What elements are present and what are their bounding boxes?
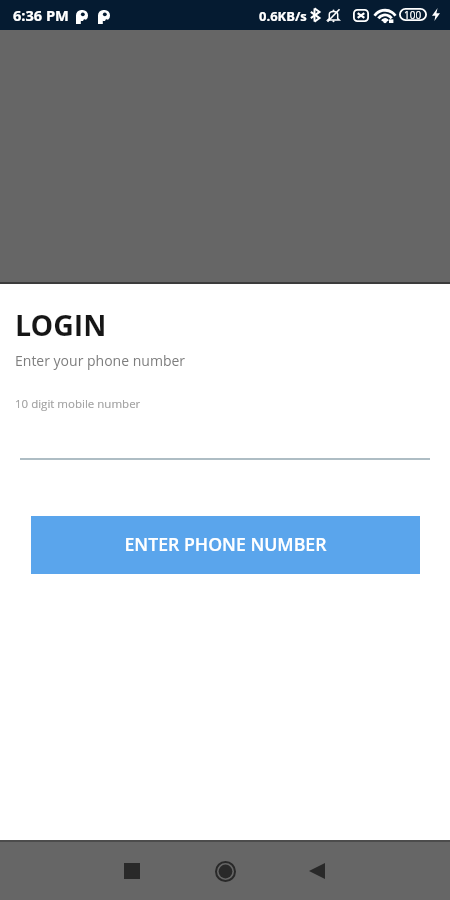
staticText: 0.6KB/s	[259, 7, 307, 25]
button[interactable]: Home	[201, 842, 249, 900]
button[interactable]: ENTER PHONE NUMBER	[31, 516, 420, 574]
staticText: ENTER PHONE NUMBER	[124, 532, 327, 556]
staticText: 6:36 PM	[13, 5, 69, 25]
button[interactable]: Back	[293, 842, 341, 900]
staticText: Enter your phone number	[15, 351, 186, 370]
staticText: 10 digit mobile number	[15, 396, 141, 412]
button[interactable]: 10 digit mobile number	[20, 388, 430, 460]
staticText: LOGIN	[15, 306, 107, 345]
button[interactable]: Recent apps	[108, 842, 156, 900]
staticText: 100	[404, 8, 422, 21]
